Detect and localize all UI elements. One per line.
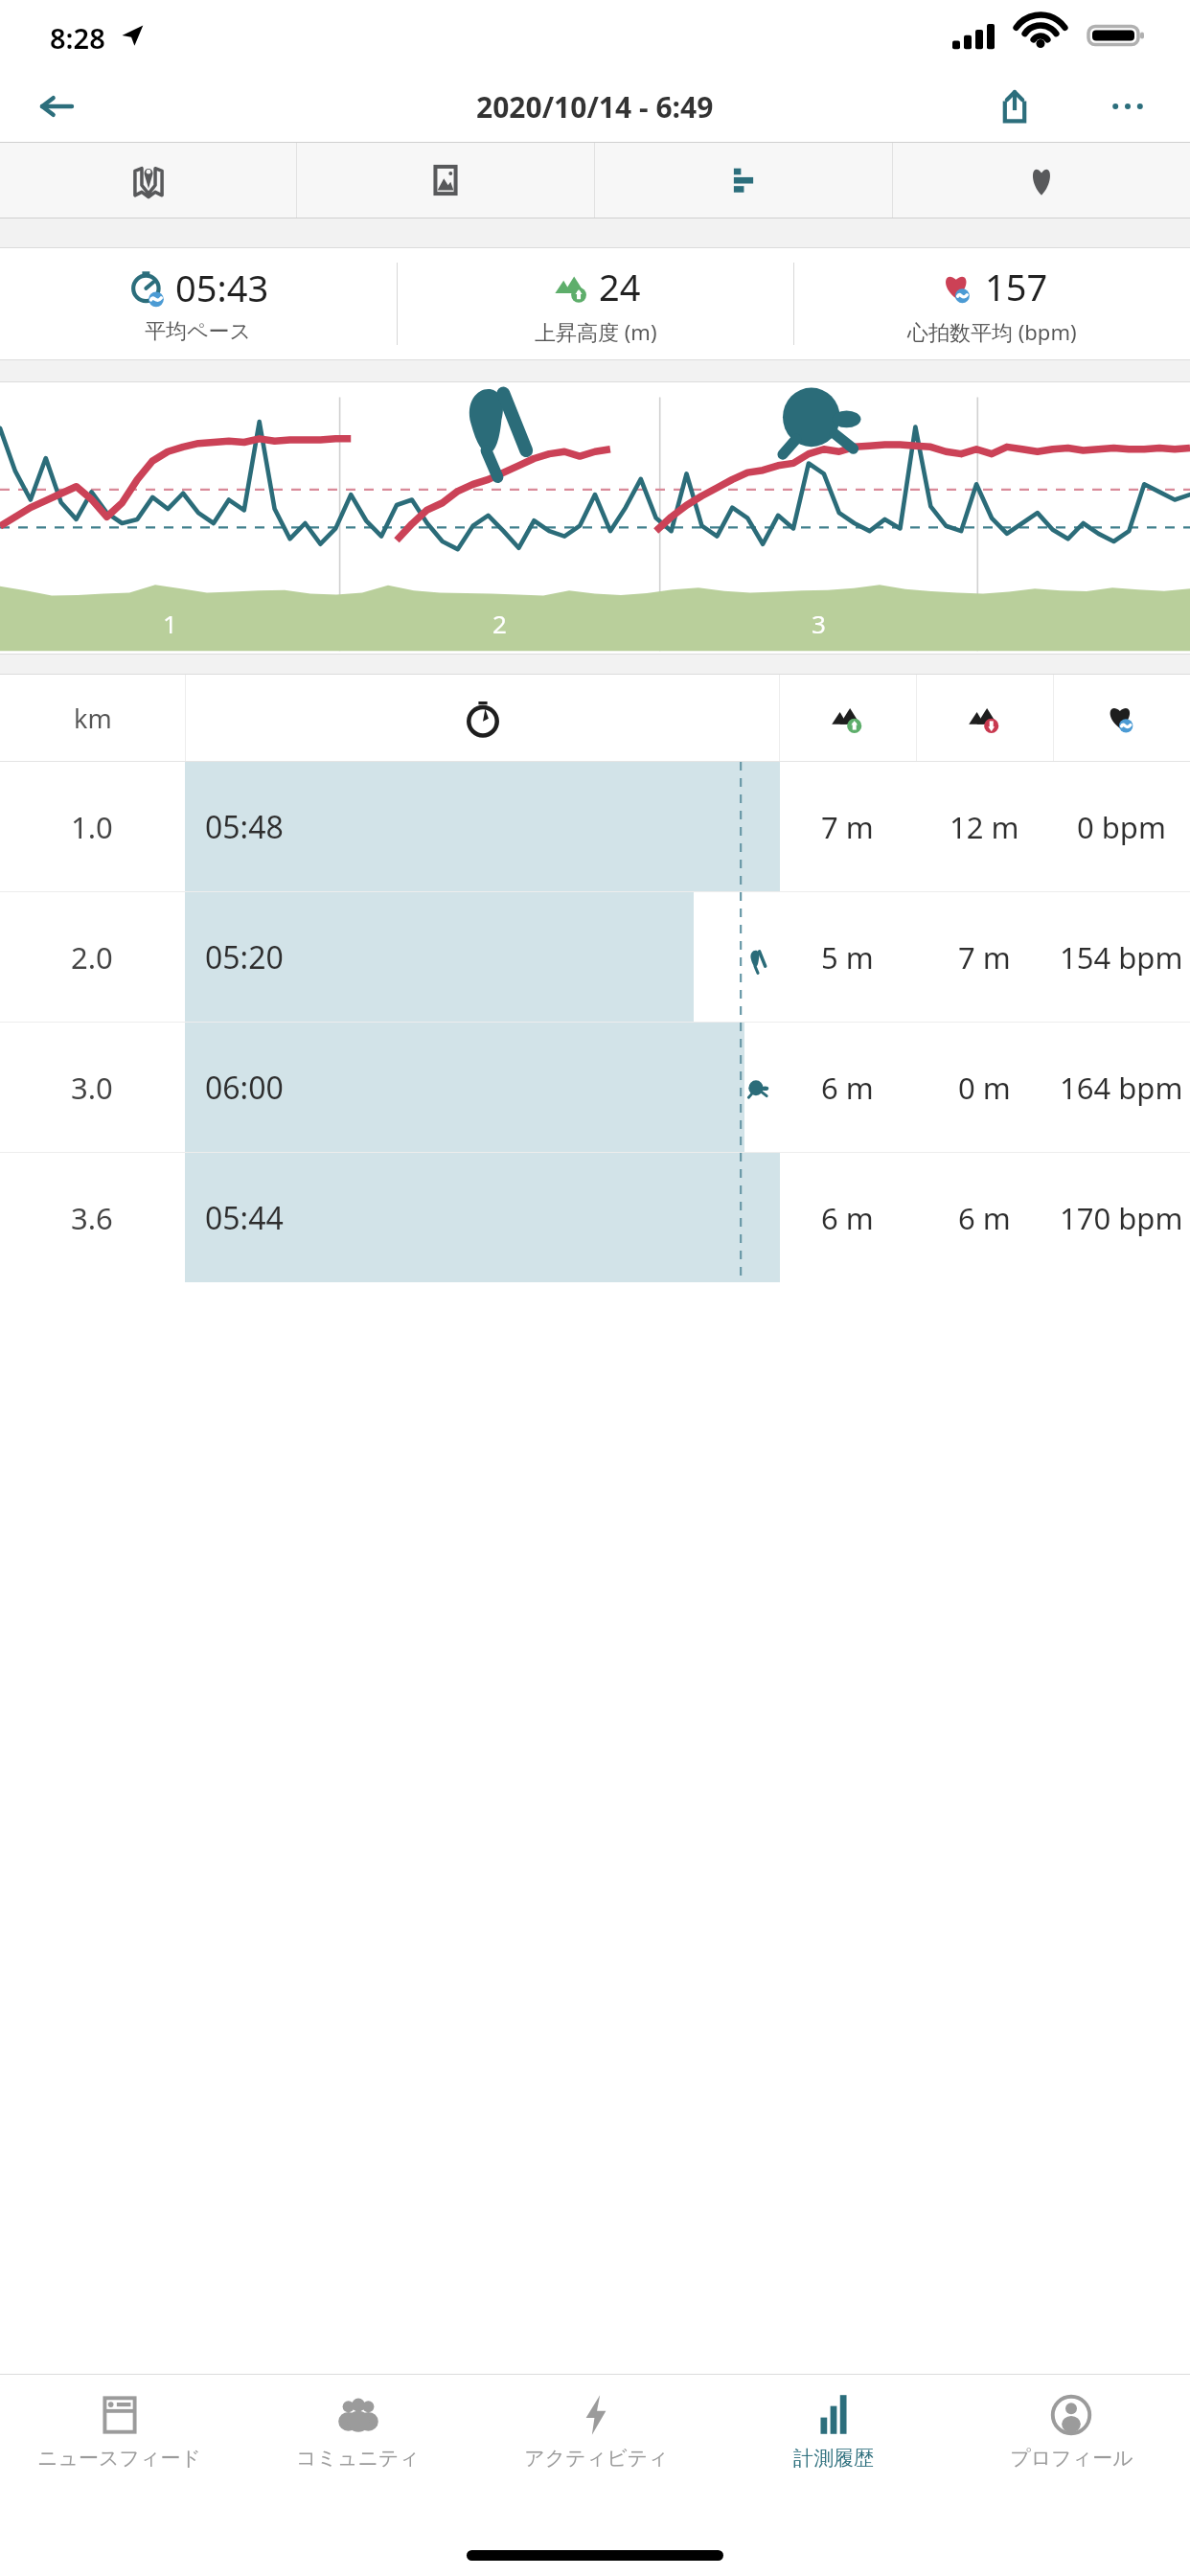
- staticText: 1.0: [71, 807, 113, 847]
- button[interactable]: コミュニティ: [239, 2375, 477, 2518]
- staticText: アクティビティ: [524, 2446, 669, 2471]
- staticText: 7 m: [958, 937, 1011, 977]
- button[interactable]: 24: [398, 248, 793, 359]
- button[interactable]: Share: [981, 73, 1048, 140]
- button[interactable]: 157: [794, 248, 1190, 359]
- staticText: 6 m: [821, 1198, 874, 1238]
- staticText: 平均ペース: [145, 318, 252, 345]
- button[interactable]: 3.6: [0, 1153, 1190, 1282]
- staticText: 12 m: [950, 807, 1019, 847]
- staticText: プロフィール: [1010, 2446, 1133, 2471]
- staticText: 3: [812, 607, 826, 640]
- button[interactable]: プロフィール: [952, 2375, 1190, 2518]
- button[interactable]: アクティビティ: [477, 2375, 715, 2518]
- button[interactable]: ニュースフィード: [0, 2375, 239, 2518]
- staticText: 157: [985, 262, 1048, 311]
- button[interactable]: Map: [0, 143, 296, 218]
- staticText: 3.6: [71, 1198, 113, 1238]
- staticText: 6 m: [821, 1068, 874, 1108]
- button[interactable]: More options: [1094, 73, 1161, 140]
- staticText: 0 m: [958, 1068, 1011, 1108]
- staticText: 164 bpm: [1060, 1068, 1183, 1108]
- staticText: 05:43: [175, 263, 269, 312]
- staticText: 上昇高度 (m): [535, 317, 657, 346]
- button[interactable]: Heart rate: [893, 143, 1190, 218]
- staticText: 心拍数平均 (bpm): [907, 317, 1077, 346]
- button[interactable]: 1.0: [0, 762, 1190, 891]
- staticText: 24: [599, 262, 641, 311]
- staticText: 2: [492, 607, 507, 640]
- staticText: 05:44: [205, 1197, 284, 1239]
- button[interactable]: 計測履歴: [715, 2375, 952, 2518]
- staticText: ニュースフィード: [37, 2446, 201, 2471]
- staticText: 3.0: [71, 1068, 113, 1108]
- button[interactable]: 3.0: [0, 1023, 1190, 1152]
- staticText: 5 m: [821, 937, 874, 977]
- staticText: 2.0: [71, 937, 113, 977]
- staticText: 2020/10/14 - 6:49: [476, 87, 714, 126]
- staticText: 8:28: [50, 19, 105, 57]
- staticText: コミュニティ: [296, 2446, 420, 2471]
- staticText: km: [74, 701, 112, 736]
- button[interactable]: Photos: [297, 143, 594, 218]
- staticText: 05:48: [205, 806, 284, 848]
- staticText: 6 m: [958, 1198, 1011, 1238]
- button[interactable]: 05:43: [0, 248, 397, 359]
- button[interactable]: Back: [23, 73, 90, 140]
- staticText: 06:00: [205, 1067, 284, 1109]
- staticText: 7 m: [821, 807, 874, 847]
- button[interactable]: Charts: [595, 143, 892, 218]
- staticText: 1: [163, 607, 177, 640]
- staticText: 計測履歴: [793, 2446, 874, 2471]
- staticText: 0 bpm: [1077, 807, 1166, 847]
- button[interactable]: 2.0: [0, 892, 1190, 1022]
- staticText: 170 bpm: [1060, 1198, 1183, 1238]
- staticText: 05:20: [205, 936, 284, 978]
- staticText: 154 bpm: [1060, 937, 1183, 977]
